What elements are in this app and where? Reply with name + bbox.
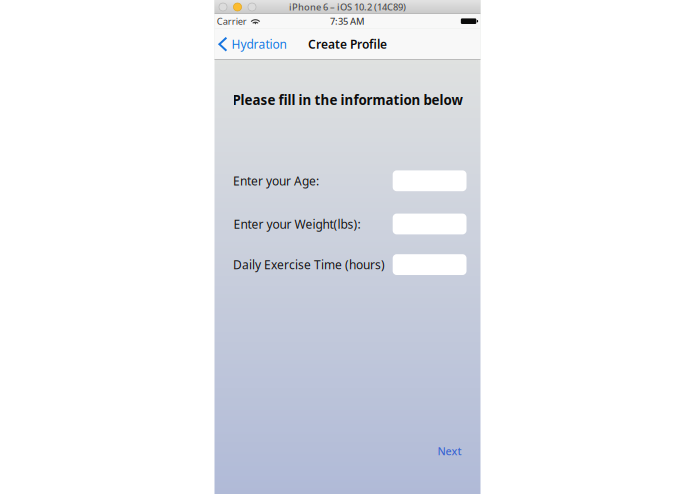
staticText: iPhone 6 – iOS 10.2 (14C89): [289, 1, 406, 13]
staticText: Enter your Age:: [233, 173, 319, 189]
staticText: Enter your Weight(lbs):: [233, 216, 360, 232]
staticText: Carrier: [217, 15, 247, 27]
staticText: Next: [438, 444, 462, 458]
staticText: Hydration: [231, 36, 286, 52]
button[interactable]: Enter your Age:: [393, 170, 466, 191]
button[interactable]: Back to Hydration: [214, 29, 293, 60]
button[interactable]: Next: [432, 439, 468, 463]
staticText: Daily Exercise Time (hours): [233, 257, 385, 272]
staticText: 7:35 AM: [330, 15, 365, 27]
staticText: Please fill in the information below: [233, 91, 463, 109]
button[interactable]: Daily Exercise Time (hours): [393, 254, 466, 275]
staticText: Create Profile: [308, 36, 387, 52]
